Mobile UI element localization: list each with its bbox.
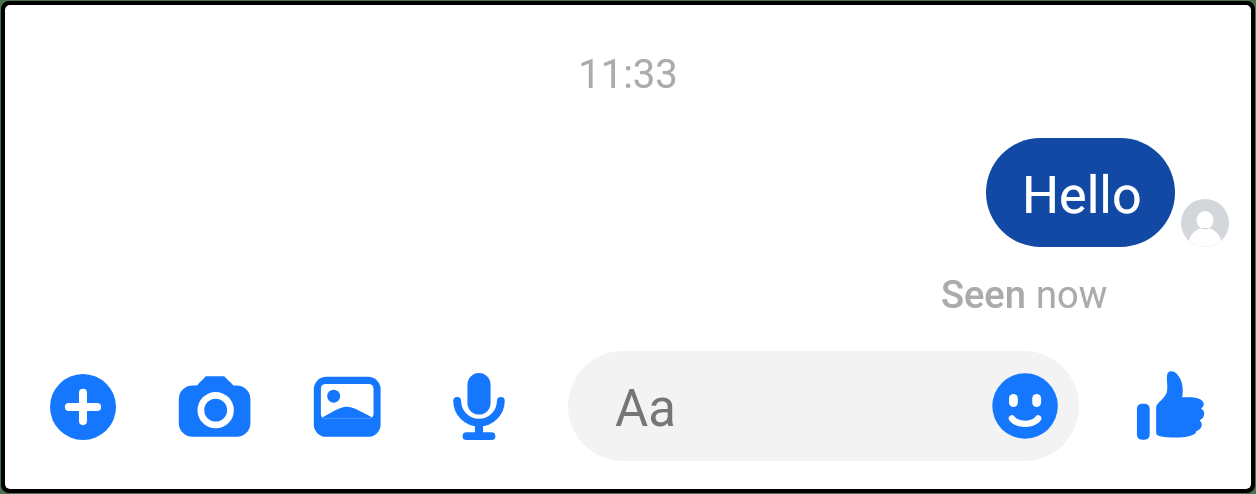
button[interactable]: Aa xyxy=(568,351,1079,461)
button[interactable]: Gallery xyxy=(308,368,386,446)
staticText: now xyxy=(1036,273,1108,318)
button[interactable]: Hello xyxy=(986,138,1175,247)
staticText: Hello xyxy=(1022,165,1142,226)
staticText: Aa xyxy=(615,379,677,439)
button[interactable]: Like xyxy=(1134,368,1206,442)
button[interactable]: Voice message xyxy=(440,368,518,446)
button[interactable]: Emoji xyxy=(990,370,1060,440)
button[interactable]: Camera xyxy=(176,368,254,446)
staticText: 11:33 xyxy=(0,51,1256,98)
staticText: Seen xyxy=(941,273,1036,318)
button[interactable]: Add xyxy=(44,368,122,446)
